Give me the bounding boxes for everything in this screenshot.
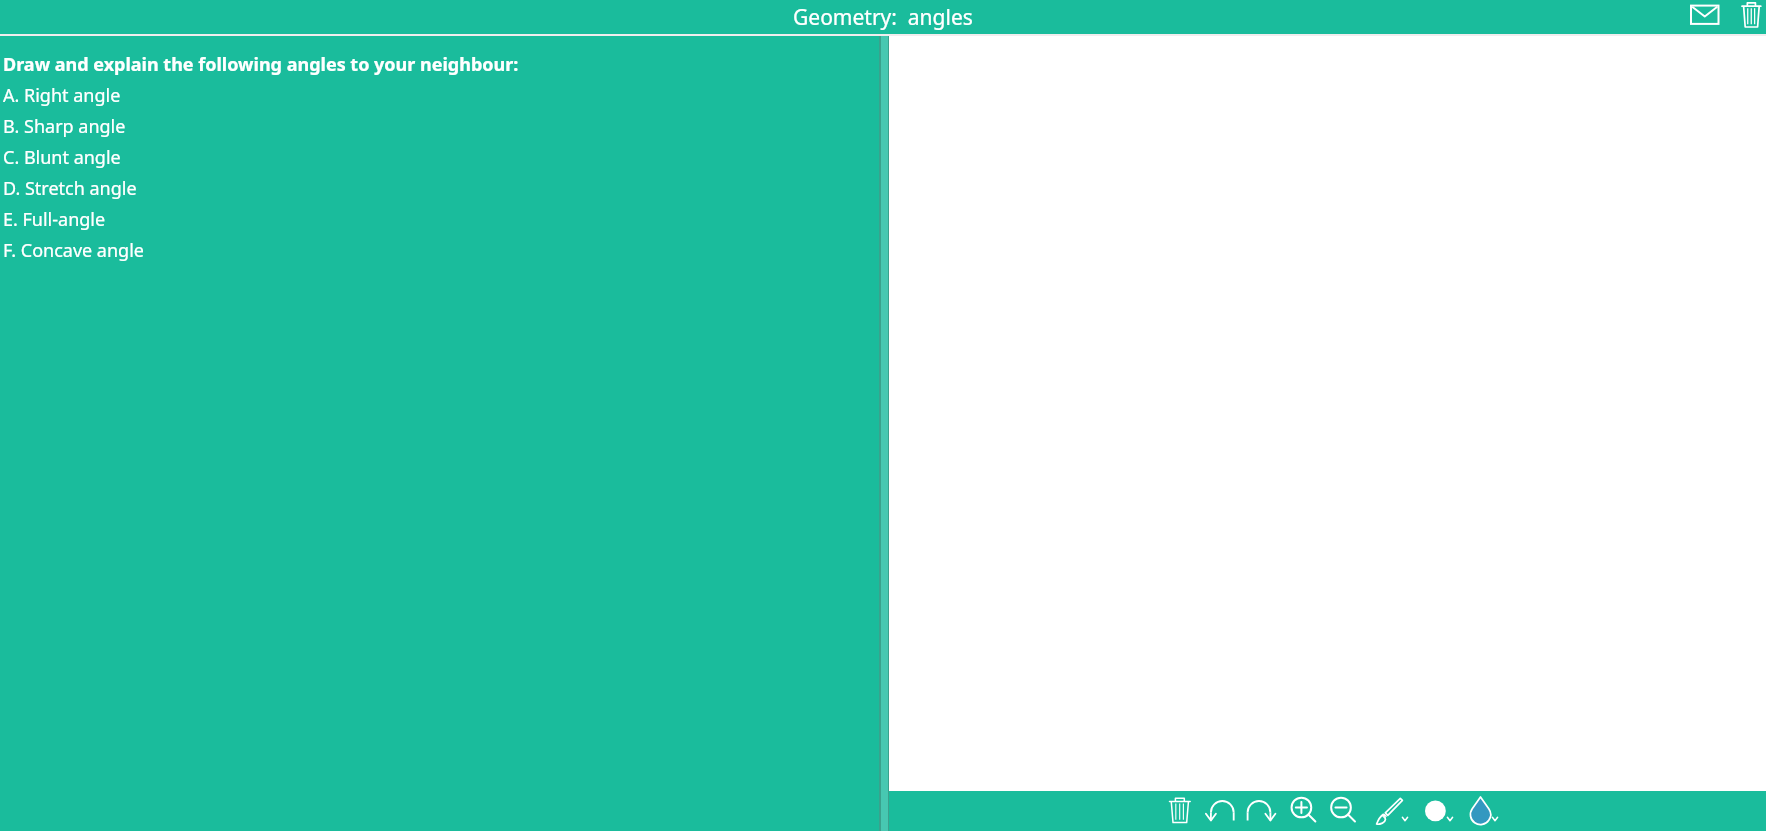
button[interactable]: B. Sharp angle <box>0 110 879 141</box>
button[interactable]: Colour <box>1464 791 1504 831</box>
button[interactable]: C. Blunt angle <box>0 141 879 172</box>
button[interactable]: Mail <box>1686 0 1724 34</box>
button[interactable]: D. Stretch angle <box>0 172 879 203</box>
staticText: Draw and explain the following angles to… <box>3 52 519 77</box>
staticText: D. Stretch angle <box>3 176 137 201</box>
button[interactable]: Zoom in <box>1288 791 1320 831</box>
staticText: Geometry: angles <box>793 3 973 32</box>
button[interactable]: Zoom out <box>1327 791 1359 831</box>
staticText: B. Sharp angle <box>3 114 126 139</box>
button[interactable]: Resize panel <box>879 36 889 831</box>
button[interactable]: Clear <box>1166 791 1196 831</box>
button[interactable]: Brush <box>1372 791 1414 831</box>
staticText: C. Blunt angle <box>3 145 121 170</box>
button[interactable]: Redo <box>1246 791 1282 831</box>
staticText: F. Concave angle <box>3 238 144 263</box>
staticText: E. Full-angle <box>3 207 106 232</box>
button[interactable]: Stroke width <box>1418 791 1456 831</box>
button[interactable]: Delete <box>1736 0 1766 34</box>
button[interactable]: Undo <box>1205 791 1241 831</box>
button[interactable]: E. Full-angle <box>0 203 879 234</box>
staticText: A. Right angle <box>3 83 121 108</box>
button[interactable]: A. Right angle <box>0 79 879 110</box>
button[interactable]: F. Concave angle <box>0 234 879 265</box>
